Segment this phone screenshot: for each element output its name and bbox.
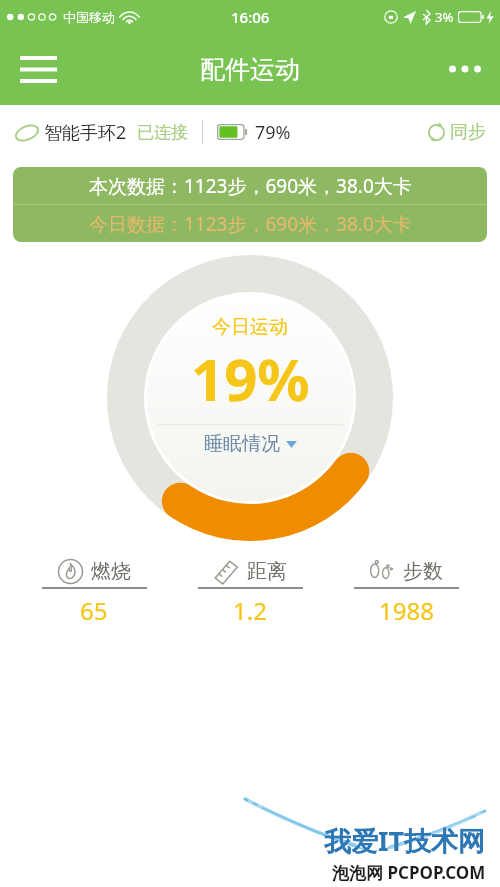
button[interactable]: 本次数据：1123步，690米，38.0大卡	[13, 167, 487, 242]
staticText: 泡泡网 PCPOP.COM	[332, 861, 486, 884]
staticText: 今日数据：1123步，690米，38.0大卡	[89, 211, 412, 237]
button[interactable]: More options	[438, 42, 492, 96]
button[interactable]: 燃烧	[16, 558, 172, 627]
staticText: 今日运动	[212, 315, 288, 339]
button[interactable]: Menu	[10, 41, 66, 97]
staticText: 步数	[403, 559, 443, 584]
staticText: 16:06	[231, 7, 270, 27]
button[interactable]: 距离	[172, 558, 328, 627]
button[interactable]: 同步	[426, 121, 486, 144]
staticText: 睡眠情况	[204, 432, 280, 456]
button[interactable]: 智能手环2	[14, 120, 188, 145]
staticText: 同步	[450, 121, 486, 144]
staticText: 中国移动	[63, 9, 115, 25]
button[interactable]: 睡眠情况	[204, 432, 297, 456]
staticText: 65	[80, 594, 108, 627]
staticText: 3%	[435, 8, 454, 26]
button[interactable]: 步数	[328, 558, 484, 627]
button[interactable]: 今日运动	[147, 295, 353, 501]
staticText: 1988	[379, 594, 434, 627]
staticText: 79%	[255, 120, 291, 145]
staticText: 燃烧	[91, 559, 131, 584]
staticText: 已连接	[137, 122, 188, 143]
staticText: 智能手环2	[44, 120, 127, 145]
staticText: 19%	[191, 339, 310, 418]
staticText: 本次数据：1123步，690米，38.0大卡	[89, 173, 412, 199]
staticText: 距离	[247, 559, 287, 584]
staticText: 1.2	[233, 594, 267, 627]
staticText: 配件运动	[200, 54, 300, 85]
staticText: 我爱IT技术网	[324, 822, 486, 859]
